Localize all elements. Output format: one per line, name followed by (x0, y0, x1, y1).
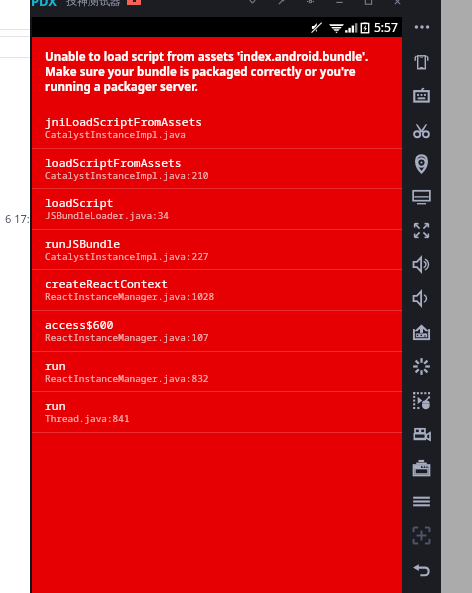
button[interactable]: loadScriptFromAssets (32, 149, 402, 190)
staticText: CatalystInstanceImpl.java:210 (45, 169, 209, 182)
staticText: jniLoadScriptFromAssets (45, 114, 203, 130)
button[interactable]: Display mode (402, 180, 441, 212)
button[interactable]: Volume (402, 79, 441, 111)
staticText: 技神测试器 (66, 0, 121, 8)
staticText: loadScriptFromAssets (45, 155, 182, 171)
button[interactable]: Volume up (402, 248, 441, 280)
button[interactable]: Rotate left (402, 113, 441, 145)
staticText: CatalystInstanceImpl.java (45, 128, 186, 141)
button[interactable]: Power (402, 45, 441, 77)
button[interactable]: Close (383, 0, 412, 10)
staticText: ReactInstanceManager.java:1028 (45, 290, 215, 303)
button[interactable]: Settings (296, 0, 325, 10)
button[interactable]: More (402, 11, 441, 43)
button[interactable]: createReactContext (32, 270, 402, 311)
staticText: PDX (31, 0, 58, 9)
button[interactable]: runJSBundle (32, 230, 402, 271)
staticText: access$600 (45, 317, 114, 333)
staticText: JSBundleLoader.java:34 (45, 209, 169, 222)
button[interactable]: loadScript (32, 189, 402, 230)
button[interactable]: Maximize (354, 0, 383, 10)
button[interactable]: access$600 (32, 311, 402, 352)
staticText: runJSBundle (45, 236, 121, 252)
button[interactable]: Settings (402, 350, 441, 382)
button[interactable]: Add (402, 519, 441, 551)
staticText: ReactInstanceManager.java:107 (45, 331, 209, 344)
staticText: ReactInstanceManager.java:832 (45, 372, 209, 385)
staticText: createReactContext (45, 276, 169, 292)
button[interactable]: run (32, 352, 402, 393)
button[interactable]: run (32, 392, 402, 433)
staticText: Thread.java:841 (45, 412, 130, 425)
button[interactable]: Back (402, 553, 441, 585)
button[interactable]: Install APK (402, 316, 441, 348)
button[interactable]: Expand (238, 0, 267, 10)
staticText: loadScript (45, 195, 114, 211)
button[interactable]: Menu (402, 485, 441, 517)
button[interactable]: Pin (267, 0, 296, 10)
staticText: run (45, 358, 66, 374)
button[interactable]: Volume down (402, 282, 441, 314)
staticText: 5:57 (374, 19, 398, 35)
button[interactable]: Location (402, 147, 441, 179)
staticText: Unable to load script from assets 'index… (45, 49, 388, 94)
staticText: 6 17: (5, 211, 30, 224)
button[interactable]: jniLoadScriptFromAssets (32, 108, 402, 149)
staticText: run (45, 398, 66, 414)
button[interactable]: Screenshot (402, 451, 441, 483)
button[interactable]: Record (402, 384, 441, 416)
staticText: CatalystInstanceImpl.java:227 (45, 250, 209, 263)
button[interactable]: Minimize (325, 0, 354, 10)
button[interactable]: Camera (402, 418, 441, 450)
button[interactable]: Fullscreen (402, 214, 441, 246)
